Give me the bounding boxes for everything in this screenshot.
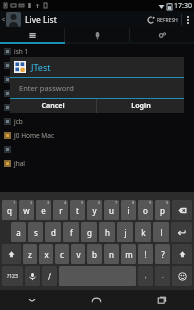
staticText: 7 (115, 200, 118, 205)
button[interactable]: Settings tab (130, 28, 194, 42)
button[interactable]: Enter (171, 222, 192, 242)
button[interactable]: x (39, 244, 53, 264)
button[interactable]: s (28, 222, 43, 242)
button[interactable]: v (71, 244, 85, 264)
button[interactable]: 0 (155, 200, 170, 220)
staticText: ! (144, 249, 147, 260)
button[interactable]: d (45, 222, 61, 242)
button[interactable]: c (55, 244, 69, 264)
staticText: i (127, 205, 130, 216)
button[interactable]: ish 1 (0, 44, 194, 58)
staticText: 0 (166, 200, 169, 205)
staticText: r (59, 205, 63, 216)
staticText: v (76, 249, 81, 260)
staticText: g (87, 227, 92, 238)
staticText: n (109, 249, 114, 260)
button[interactable]: f (63, 222, 79, 242)
button[interactable]: 4 (53, 200, 68, 220)
staticText: 9 (149, 200, 152, 205)
staticText: REFRESH (157, 17, 178, 24)
staticText: p (160, 205, 165, 216)
button[interactable]: More options (182, 11, 194, 28)
button[interactable]: ! (138, 244, 153, 264)
button[interactable] (0, 72, 194, 86)
staticText: 2 (30, 200, 33, 205)
button[interactable]: 1 (2, 200, 17, 220)
button[interactable]: z (23, 244, 37, 264)
staticText: y (92, 205, 97, 216)
staticText: Live List (25, 14, 57, 26)
staticText: 5 (81, 200, 84, 205)
button[interactable]: g (81, 222, 97, 242)
staticText: jhal (14, 159, 26, 168)
staticText: ish 1 (14, 47, 29, 56)
staticText: b (92, 249, 97, 260)
staticText: Login (131, 101, 151, 111)
button[interactable] (0, 100, 194, 114)
button[interactable]: h (99, 222, 115, 242)
button[interactable]: Backspace (172, 200, 192, 220)
button[interactable]: Login (97, 99, 184, 113)
staticText: w (23, 205, 30, 216)
staticText: c (60, 249, 64, 260)
staticText: s (34, 227, 38, 238)
button[interactable] (0, 142, 194, 156)
button[interactable]: Hide keyboard (0, 290, 64, 310)
button[interactable]: jcb (0, 114, 194, 128)
button[interactable]: l (153, 222, 169, 242)
button[interactable]: n (104, 244, 119, 264)
button[interactable]: 7 (104, 200, 119, 220)
staticText: u (109, 205, 114, 216)
button[interactable]: b (87, 244, 102, 264)
staticText: J0 Home Mac (14, 131, 55, 140)
staticText: m (125, 249, 133, 260)
button[interactable]: Emoji (172, 266, 192, 286)
button[interactable]: Shift (172, 244, 192, 264)
button[interactable]: , (138, 266, 153, 286)
button[interactable]: a (11, 222, 26, 242)
button[interactable]: ? (155, 244, 170, 264)
staticText: z (28, 249, 32, 260)
staticText: 6 (98, 200, 101, 205)
button[interactable]: REFRESH (144, 14, 181, 26)
staticText: q (7, 205, 12, 216)
button[interactable]: Home (64, 290, 129, 310)
staticText: ? (161, 249, 165, 260)
button[interactable]: List tab (0, 28, 64, 42)
button[interactable]: 6 (87, 200, 102, 220)
staticText: 17:30 (174, 1, 192, 11)
button[interactable]: Devices tab (65, 28, 129, 42)
staticText: ?123 (7, 273, 18, 280)
button[interactable]: 2 (19, 200, 34, 220)
button[interactable]: Recent apps (129, 290, 194, 310)
button[interactable]: / (42, 266, 57, 286)
staticText: x (44, 249, 49, 260)
button[interactable]: 9 (138, 200, 153, 220)
button[interactable]: Enter password (10, 78, 184, 98)
staticText: , (145, 272, 147, 280)
staticText: h (105, 227, 110, 238)
button[interactable]: Cancel (10, 99, 96, 113)
button[interactable]: 5 (70, 200, 85, 220)
button[interactable]: 3 (36, 200, 51, 220)
button[interactable]: . (155, 266, 170, 286)
button[interactable]: Shift (2, 244, 21, 264)
button[interactable] (0, 58, 194, 72)
button[interactable]: ?123 (2, 266, 23, 286)
button[interactable]: 8 (121, 200, 136, 220)
button[interactable]: j (117, 222, 133, 242)
button[interactable]: k (135, 222, 151, 242)
button[interactable]: Voice input (25, 266, 40, 286)
button[interactable]: m (121, 244, 136, 264)
staticText: Enter password (19, 83, 74, 93)
button[interactable] (0, 86, 194, 100)
staticText: e (41, 205, 46, 216)
button[interactable]: jhal (0, 156, 194, 170)
staticText: a (16, 227, 21, 238)
button[interactable]: App icon (6, 12, 21, 27)
staticText: j (124, 227, 127, 238)
staticText: f (70, 227, 73, 238)
button[interactable]: J0 Home Mac (0, 128, 194, 142)
staticText: k (141, 227, 146, 238)
